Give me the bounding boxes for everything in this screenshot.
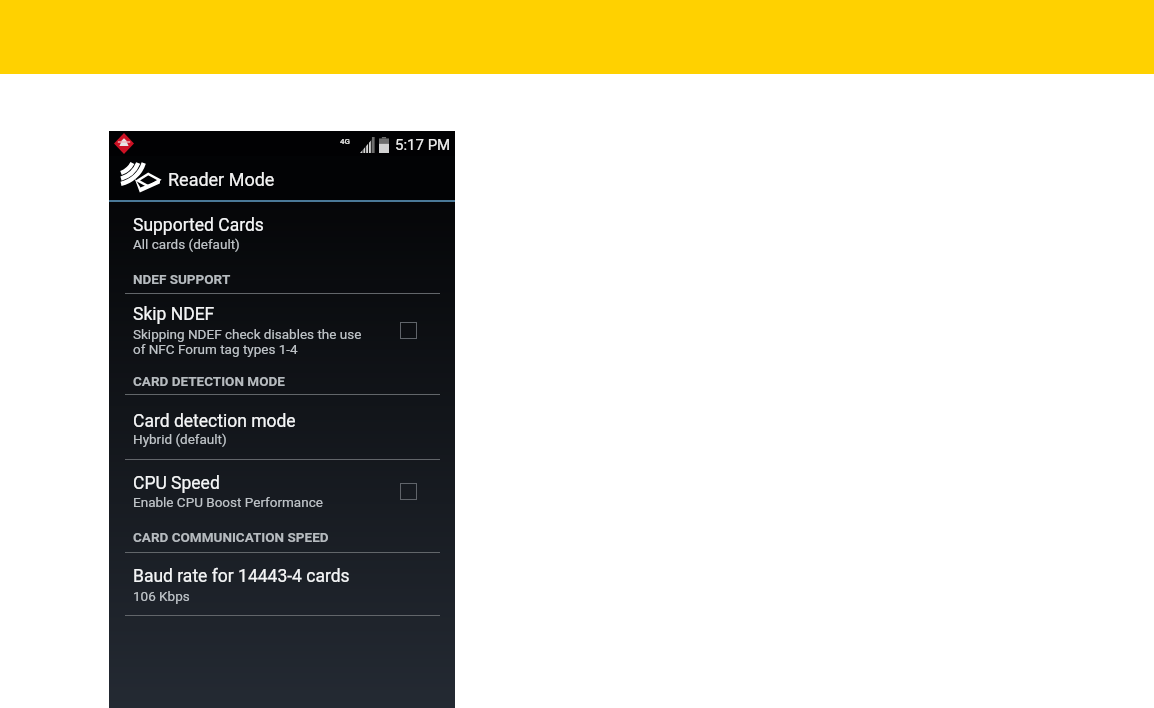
button[interactable]: Toggle Skip NDEF (400, 322, 417, 339)
button[interactable]: NFC reader (109, 156, 455, 200)
staticText: Baud rate for 14443-4 cards (133, 566, 350, 587)
button[interactable]: Skip NDEF (109, 300, 455, 394)
button[interactable]: Toggle CPU Speed (400, 483, 417, 500)
other: Signal strength (360, 137, 374, 153)
staticText: Enable CPU Boost Performance (133, 494, 323, 510)
other: NFC reader (121, 163, 160, 195)
other: Notification (114, 133, 134, 154)
staticText: CARD DETECTION MODE (133, 373, 285, 389)
staticText: 106 Kbps (133, 588, 190, 604)
staticText: Skip NDEF (133, 304, 215, 325)
button[interactable]: Card detection mode (109, 405, 455, 460)
staticText: 5:17 PM (395, 136, 451, 154)
staticText: Skipping NDEF check disables the use of … (133, 326, 362, 357)
button[interactable]: CPU Speed (109, 467, 455, 553)
other: Battery (379, 137, 389, 153)
staticText: Reader Mode (168, 169, 275, 190)
staticText: Card detection mode (133, 411, 296, 432)
staticText: Supported Cards (133, 215, 264, 236)
staticText: All cards (default) (133, 236, 240, 252)
staticText: Hybrid (default) (133, 431, 227, 447)
staticText: CPU Speed (133, 473, 220, 494)
staticText: CARD COMMUNICATION SPEED (133, 529, 329, 545)
staticText: NDEF SUPPORT (133, 271, 231, 287)
button[interactable]: Supported Cards (109, 208, 455, 293)
button[interactable]: Baud rate for 14443-4 cards (109, 560, 455, 615)
staticText: 4G (340, 137, 350, 146)
